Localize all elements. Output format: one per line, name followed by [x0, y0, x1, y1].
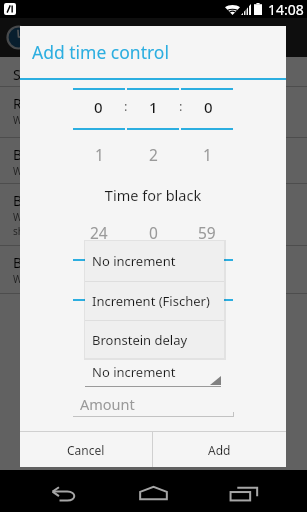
staticText: Bullet: [13, 191, 51, 210]
staticText: :: [124, 97, 128, 115]
button[interactable]: Recents: [216, 474, 272, 512]
staticText: No increment: [92, 252, 176, 270]
button[interactable]: Rapid: [0, 87, 307, 138]
button[interactable]: Amount: [73, 391, 234, 417]
staticText: 2: [149, 144, 158, 165]
staticText: Rapid: [13, 94, 51, 113]
staticText: With increment of 2 sec: [13, 210, 124, 224]
staticText: Add: [208, 442, 231, 458]
button[interactable]: No increment: [85, 363, 221, 387]
staticText: Standard: [13, 65, 73, 84]
staticText: 0: [149, 222, 158, 243]
staticText: With increment of 5 sec: [13, 164, 124, 178]
button[interactable]: Bullet: [0, 184, 307, 246]
staticText: :: [179, 97, 183, 115]
staticText: 24: [90, 222, 108, 243]
staticText: 1: [95, 144, 104, 165]
staticText: Blitz: [13, 145, 41, 164]
button[interactable]: No increment: [85, 241, 224, 281]
button[interactable]: Blitz: [0, 138, 307, 184]
staticText: Cancel: [67, 442, 105, 458]
button[interactable]: Increment (Fischer): [85, 282, 224, 320]
staticText: Blitz 3+2: [13, 253, 69, 272]
staticText: 1: [203, 144, 212, 165]
button[interactable]: Home: [125, 473, 181, 512]
button[interactable]: Cancel: [20, 432, 152, 467]
staticText: Time for black: [20, 185, 286, 205]
staticText: 0: [94, 97, 103, 117]
staticText: 0: [204, 97, 213, 117]
button[interactable]: Bronstein delay: [85, 321, 224, 358]
staticText: Bronstein delay: [92, 331, 188, 349]
staticText: Add time control: [32, 40, 169, 64]
button[interactable]: Standard: [0, 58, 307, 87]
button[interactable]: Blitz 3+2: [0, 246, 307, 294]
staticText: With increment: [13, 272, 86, 286]
button[interactable]: Back: [36, 474, 92, 512]
staticText: No increment: [92, 363, 176, 381]
staticText: With increment of 10 sec: [13, 113, 130, 127]
staticText: shorter game: [13, 224, 77, 238]
button[interactable]: Add: [153, 432, 286, 467]
staticText: 14:08: [268, 0, 304, 18]
staticText: Amount: [80, 394, 135, 414]
staticText: 1: [149, 97, 158, 117]
staticText: 59: [198, 222, 216, 243]
staticText: Increment (Fischer): [92, 292, 210, 310]
staticText: Without increment: [13, 84, 102, 87]
